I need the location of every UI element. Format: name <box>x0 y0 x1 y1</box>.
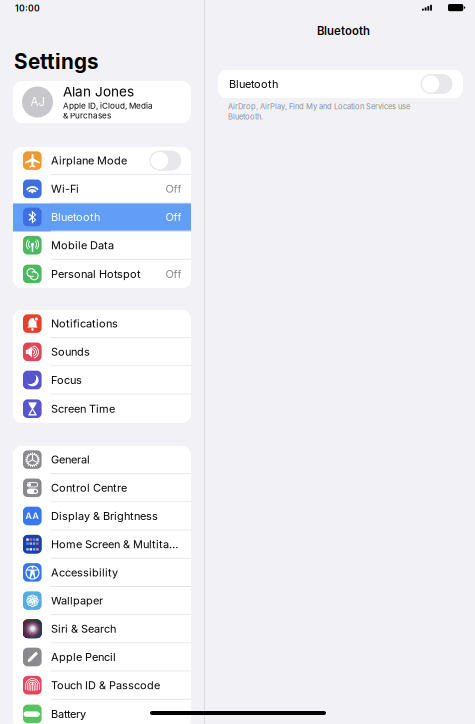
staticText: 10:00 <box>15 3 40 13</box>
staticText: Mobile Data <box>51 239 114 252</box>
button[interactable]: AJ <box>13 81 191 123</box>
staticText: AA <box>25 510 39 522</box>
staticText: Settings <box>14 49 99 74</box>
staticText: Screen Time <box>51 402 115 415</box>
staticText: Off <box>165 182 181 195</box>
staticText: Bluetooth <box>51 210 100 224</box>
button[interactable]: Screen Time <box>13 395 191 423</box>
button[interactable]: Focus <box>13 366 191 395</box>
staticText: Off <box>165 210 181 224</box>
button[interactable]: Mobile Data <box>13 232 191 260</box>
staticText: Bluetooth <box>229 77 278 91</box>
button[interactable]: Touch ID & Passcode <box>13 672 191 700</box>
staticText: Airplane Mode <box>51 154 127 167</box>
button[interactable]: Battery <box>13 700 191 724</box>
staticText: Siri & Search <box>51 622 116 635</box>
button[interactable]: Apple Pencil <box>13 643 191 672</box>
staticText: Sounds <box>51 345 90 358</box>
staticText: Wallpaper <box>51 594 103 607</box>
button[interactable]: Control Centre <box>13 474 191 502</box>
staticText: Wi-Fi <box>51 182 79 195</box>
staticText: Off <box>165 267 181 280</box>
staticText: AirDrop, AirPlay, Find My and Location S… <box>228 102 410 111</box>
staticText: Control Centre <box>51 481 127 494</box>
button[interactable]: Siri & Search <box>13 615 191 643</box>
button[interactable]: Bluetooth <box>13 203 191 232</box>
button[interactable]: Personal Hotspot <box>13 260 191 288</box>
staticText: AJ <box>30 95 44 109</box>
button[interactable]: Home Screen & Multitas... <box>13 531 191 559</box>
staticText: Touch ID & Passcode <box>51 679 160 692</box>
staticText: Display & Brightness <box>51 509 158 523</box>
staticText: Personal Hotspot <box>51 267 141 280</box>
button[interactable]: Sounds <box>13 338 191 366</box>
staticText: Notifications <box>51 317 118 330</box>
button[interactable]: Accessibility <box>13 559 191 587</box>
staticText: Home Screen & Multitas... <box>51 538 181 551</box>
staticText: Apple ID, iCloud, Media <box>63 101 153 111</box>
staticText: Accessibility <box>51 566 118 579</box>
button[interactable]: Wallpaper <box>13 587 191 615</box>
button[interactable]: Airplane Mode <box>13 147 191 175</box>
staticText: Bluetooth. <box>228 112 263 121</box>
staticText: Bluetooth <box>317 24 370 38</box>
staticText: Apple Pencil <box>51 650 116 664</box>
staticText: Focus <box>51 373 82 387</box>
button[interactable]: Notifications <box>13 310 191 338</box>
staticText: General <box>51 453 90 466</box>
button[interactable]: AA <box>13 502 191 531</box>
staticText: & Purchases <box>63 111 111 120</box>
button[interactable]: Wi-Fi <box>13 175 191 203</box>
button[interactable]: General <box>13 446 191 474</box>
staticText: Battery <box>51 707 86 720</box>
staticText: Alan Jones <box>63 83 134 100</box>
